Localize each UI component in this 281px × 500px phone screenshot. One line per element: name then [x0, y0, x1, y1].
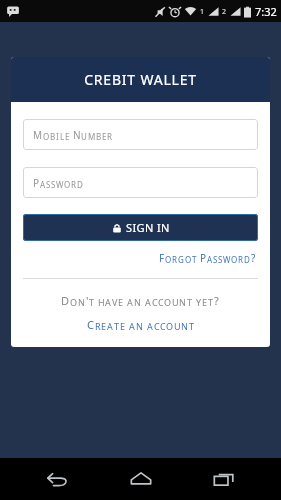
staticText: S: [51, 179, 56, 190]
button[interactable]: SIGN IN: [23, 214, 258, 241]
staticText: R: [172, 254, 178, 265]
staticText: S: [213, 254, 218, 265]
staticText: C: [152, 296, 158, 308]
staticText: G: [178, 254, 185, 265]
staticText: D: [61, 293, 70, 308]
button[interactable]: Back: [30, 458, 84, 500]
staticText: A: [145, 296, 152, 308]
staticText: N: [136, 320, 144, 332]
staticText: R: [95, 320, 101, 332]
staticText: U: [81, 131, 88, 142]
button[interactable]: P: [23, 167, 258, 198]
button[interactable]: M: [23, 119, 258, 150]
staticText: U: [172, 296, 179, 308]
staticText: 7:32: [255, 4, 277, 19]
staticText: A: [207, 254, 213, 265]
staticText: Y: [196, 296, 202, 308]
staticText: O: [43, 131, 50, 142]
staticText: E: [101, 320, 107, 332]
staticText: R: [107, 131, 113, 142]
staticText: D: [244, 254, 251, 265]
button[interactable]: F: [157, 249, 258, 267]
staticText: O: [231, 254, 238, 265]
staticText: F: [159, 251, 165, 265]
staticText: S: [46, 179, 51, 190]
staticText: T: [192, 254, 197, 265]
staticText: N: [73, 128, 81, 142]
staticText: W: [223, 254, 231, 265]
staticText: T: [89, 296, 95, 308]
staticText: E: [118, 296, 124, 308]
staticText: W: [56, 179, 64, 190]
staticText: O: [185, 254, 192, 265]
staticText: SIGN IN: [126, 220, 170, 235]
staticText: O: [165, 254, 172, 265]
staticText: A: [129, 320, 136, 332]
staticText: E: [65, 131, 70, 142]
staticText: N: [179, 296, 187, 308]
staticText: T: [187, 296, 193, 308]
staticText: U: [174, 320, 181, 332]
button[interactable]: Home: [114, 458, 168, 500]
staticText: C: [160, 320, 166, 332]
staticText: N: [181, 320, 189, 332]
staticText: C: [154, 320, 160, 332]
staticText: ?: [214, 293, 220, 308]
staticText: E: [102, 131, 107, 142]
staticText: ': [86, 293, 89, 308]
staticText: 1: [200, 7, 205, 17]
staticText: P: [200, 251, 207, 265]
staticText: N: [134, 296, 142, 308]
staticText: ?: [251, 251, 256, 265]
staticText: V: [112, 296, 118, 308]
staticText: O: [166, 320, 174, 332]
staticText: E: [202, 296, 208, 308]
staticText: CREBIT WALLET: [84, 70, 197, 89]
staticText: E: [120, 320, 126, 332]
staticText: R: [238, 254, 244, 265]
staticText: A: [147, 320, 154, 332]
staticText: O: [64, 179, 71, 190]
staticText: H: [98, 296, 105, 308]
staticText: C: [158, 296, 164, 308]
staticText: T: [189, 320, 195, 332]
staticText: B: [96, 131, 102, 142]
staticText: M: [33, 128, 43, 142]
staticText: A: [40, 179, 46, 190]
staticText: L: [60, 131, 65, 142]
staticText: P: [33, 176, 40, 190]
staticText: S: [218, 254, 223, 265]
staticText: A: [107, 320, 114, 332]
staticText: T: [114, 320, 120, 332]
staticText: A: [127, 296, 134, 308]
staticText: 2: [222, 7, 227, 17]
staticText: N: [78, 296, 86, 308]
staticText: D: [77, 179, 84, 190]
staticText: B: [50, 131, 56, 142]
staticText: A: [105, 296, 112, 308]
staticText: I: [56, 131, 60, 142]
staticText: T: [208, 296, 214, 308]
staticText: C: [87, 317, 95, 332]
button[interactable]: Recent apps: [197, 458, 251, 500]
staticText: O: [70, 296, 78, 308]
staticText: O: [164, 296, 172, 308]
staticText: M: [88, 131, 96, 142]
button[interactable]: C: [85, 315, 197, 334]
staticText: R: [71, 179, 77, 190]
